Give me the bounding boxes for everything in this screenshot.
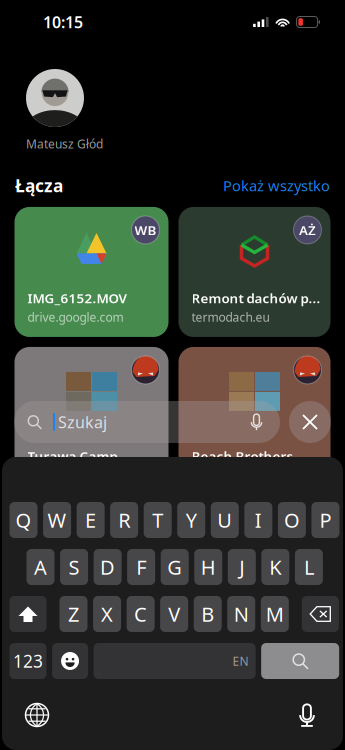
staticText: Beach Brothers [191,447,293,465]
button[interactable]: Shift [9,596,46,632]
staticText: A [34,554,47,580]
button[interactable]: U [211,502,239,538]
button[interactable]: Pokaż wszystko [223,176,330,195]
staticText: T [152,507,163,533]
staticText: drive.google.com [27,309,123,325]
staticText: Q [15,507,31,533]
staticText: Y [186,507,197,533]
button[interactable]: I [244,502,272,538]
staticText: X [101,601,113,627]
staticText: WB [134,221,156,239]
button[interactable]: L [295,549,323,585]
button[interactable]: W [43,502,71,538]
staticText: EN [233,653,249,669]
button[interactable]: Emoji [52,643,88,679]
button[interactable]: N [227,596,255,632]
button[interactable]: K [261,549,289,585]
button[interactable]: V [160,596,188,632]
button[interactable]: Search [261,643,339,679]
button[interactable]: AŻ [178,207,330,337]
staticText: IMG_6152.MOV [27,289,126,307]
staticText: Turawa Camp-... [27,447,133,465]
button[interactable]: X [93,596,121,632]
button[interactable]: F [127,549,155,585]
button[interactable]: Z [59,596,87,632]
staticText: S [68,554,79,580]
button[interactable]: Y [177,502,205,538]
staticText: F [136,554,146,580]
button[interactable]: P [311,502,339,538]
staticText: Remont dachów p... [191,289,320,307]
staticText: J [239,554,244,580]
staticText: C [134,601,147,627]
button[interactable]: C [127,596,155,632]
staticText: W [47,507,66,533]
button[interactable]: Space [94,643,256,679]
button[interactable]: Dictate [288,696,326,734]
staticText: G [167,554,182,580]
button[interactable]: Beach Brothers [178,347,330,477]
button[interactable]: Q [9,502,37,538]
button[interactable]: H [194,549,222,585]
button[interactable]: WB [14,207,168,337]
staticText: M [266,601,284,627]
button[interactable]: B [194,596,222,632]
button[interactable]: S [60,549,88,585]
staticText: Mateusz Głód [26,136,103,152]
button[interactable]: D [94,549,122,585]
staticText: Pokaż wszystko [223,176,330,195]
button[interactable]: A [26,549,54,585]
staticText: V [168,601,180,627]
staticText: K [269,554,281,580]
button[interactable]: Turawa Camp-... [14,347,168,477]
button[interactable]: J [228,549,256,585]
staticText: R [118,507,130,533]
staticText: U [217,507,232,533]
button[interactable]: Delete [302,596,339,632]
button[interactable]: Mateusz Głód [0,69,345,152]
staticText: termodach.eu [191,309,269,325]
staticText: Szukaj [58,411,107,433]
staticText: E [85,507,96,533]
staticText: O [284,507,300,533]
staticText: 123 [13,649,43,672]
staticText: Łącza [15,174,63,197]
button[interactable]: E [77,502,105,538]
button[interactable]: G [161,549,189,585]
staticText: N [234,601,249,627]
button[interactable]: M [261,596,289,632]
staticText: H [201,554,216,580]
button[interactable]: 123 [9,643,46,679]
staticText: Z [68,601,79,627]
button[interactable]: Change keyboard [18,696,56,734]
staticText: B [201,601,214,627]
staticText: I [255,507,262,533]
button[interactable]: Close search [289,401,331,443]
button[interactable]: O [278,502,306,538]
staticText: L [304,554,314,580]
button[interactable]: T [144,502,172,538]
staticText: P [319,507,331,533]
staticText: D [100,554,115,580]
staticText: AŻ [299,221,316,239]
staticText: 10:15 [43,11,83,33]
button[interactable]: R [110,502,138,538]
